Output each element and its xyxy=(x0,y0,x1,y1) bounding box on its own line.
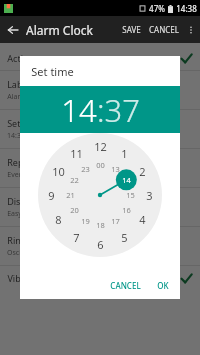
staticText: Alarm xyxy=(7,92,27,102)
staticText: Oscillate xyxy=(7,248,35,258)
staticText: 21 xyxy=(66,190,75,200)
staticText: Set time xyxy=(7,117,42,129)
staticText: 12 xyxy=(94,139,107,154)
staticText: Vibrate xyxy=(7,272,38,284)
button[interactable]: CANCEL xyxy=(105,275,146,296)
staticText: 10 xyxy=(52,164,65,179)
staticText: 18 xyxy=(96,220,105,230)
staticText: 6 xyxy=(97,237,104,252)
staticText: Repeat xyxy=(7,156,37,168)
staticText: 14 xyxy=(122,175,131,185)
staticText: CANCEL xyxy=(110,280,141,291)
staticText: 13 xyxy=(111,164,120,174)
staticText: 22 xyxy=(70,175,79,185)
button[interactable]: Back xyxy=(0,16,26,43)
staticText: 47% xyxy=(149,3,165,14)
button[interactable]: Label xyxy=(0,71,200,109)
staticText: 23 xyxy=(81,164,90,174)
staticText: Dismiss xyxy=(7,195,40,207)
staticText: 1 xyxy=(121,146,128,161)
staticText: 17 xyxy=(111,216,120,226)
staticText: :37 xyxy=(97,89,140,131)
staticText: CANCEL xyxy=(149,24,179,35)
button[interactable]: OK xyxy=(152,275,174,296)
staticText: Label xyxy=(7,78,30,90)
staticText: 8 xyxy=(55,212,62,227)
button[interactable]: Repeat xyxy=(0,149,200,187)
button[interactable]: Clock dial xyxy=(38,133,162,257)
button[interactable]: CANCEL xyxy=(145,18,183,41)
button[interactable]: Set time xyxy=(0,110,200,148)
staticText: 4 xyxy=(139,212,146,227)
staticText: SAVE xyxy=(122,24,141,35)
staticText: 19 xyxy=(81,216,90,226)
staticText: 9 xyxy=(48,188,55,203)
staticText: 2 xyxy=(139,164,146,179)
staticText: 14:37 xyxy=(7,131,25,141)
button[interactable]: Ringtone xyxy=(0,227,200,265)
staticText: Every day xyxy=(7,170,39,180)
button[interactable]: Vibrate xyxy=(0,266,200,290)
staticText: 14 xyxy=(61,89,97,131)
staticText: 00 xyxy=(96,160,105,170)
staticText: 14:38 xyxy=(176,3,197,14)
staticText: 3 xyxy=(146,188,153,203)
staticText: Active xyxy=(7,52,33,64)
button[interactable]: SAVE xyxy=(118,18,145,41)
staticText: 11 xyxy=(70,146,83,161)
staticText: 5 xyxy=(121,230,128,245)
staticText: Ringtone xyxy=(7,234,46,246)
staticText: Alarm Clock xyxy=(26,22,93,38)
staticText: 20 xyxy=(70,205,79,215)
staticText: 16 xyxy=(122,205,131,215)
staticText: Easy xyxy=(7,209,22,219)
button[interactable]: Dismiss xyxy=(0,188,200,226)
staticText: 7 xyxy=(73,230,80,245)
staticText: OK xyxy=(157,280,169,291)
button[interactable]: More options xyxy=(183,16,198,43)
staticText: 15 xyxy=(126,190,135,200)
staticText: Set time xyxy=(31,64,74,79)
button[interactable]: Active xyxy=(0,46,200,70)
